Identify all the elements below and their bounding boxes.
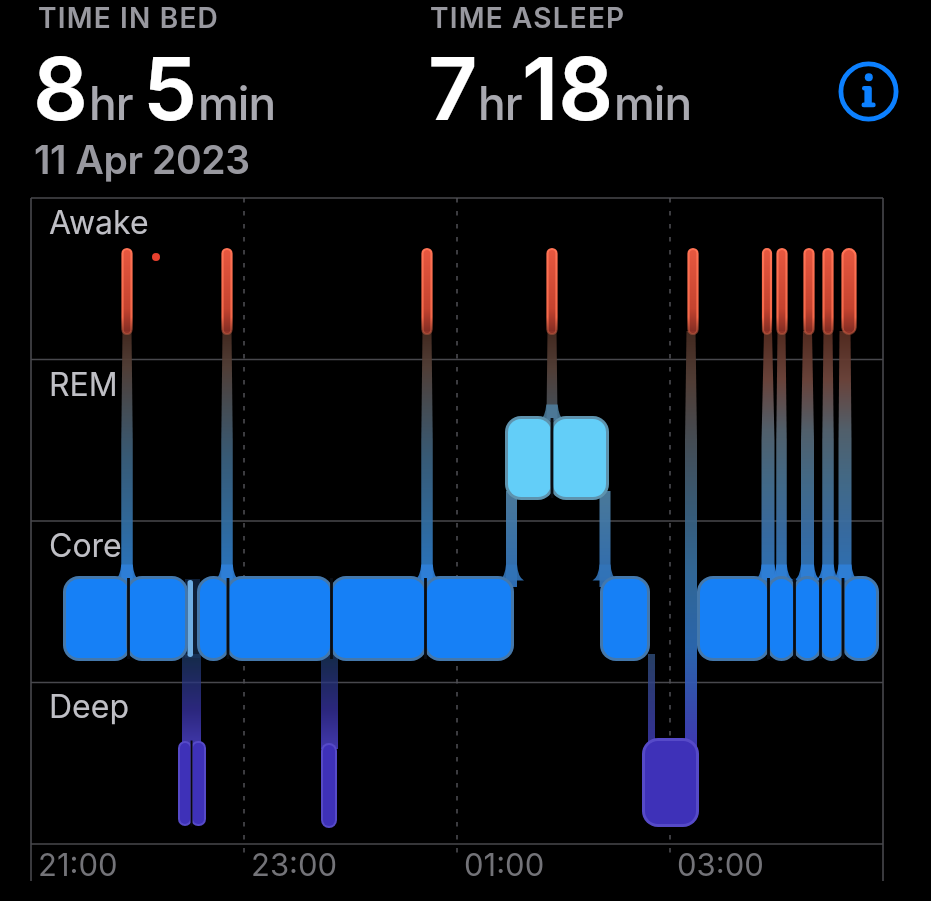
staticText: 5	[143, 37, 198, 141]
staticText: min	[614, 75, 692, 131]
staticText: Core	[49, 526, 122, 565]
button[interactable]	[841, 64, 897, 120]
staticText: 18	[522, 37, 614, 141]
staticText: Deep	[49, 687, 129, 726]
staticText: 03:00	[677, 846, 764, 884]
staticText: hr	[89, 75, 133, 131]
staticText: 7	[428, 37, 478, 141]
staticText: min	[198, 75, 276, 131]
staticText: Awake	[49, 203, 149, 242]
staticText: TIME ASLEEP	[430, 1, 626, 35]
staticText: REM	[49, 365, 118, 404]
staticText: 23:00	[251, 846, 338, 884]
staticText: 11 Apr 2023	[34, 136, 250, 183]
staticText: TIME IN BED	[38, 1, 219, 35]
staticText: 01:00	[464, 846, 545, 884]
staticText: 8	[33, 37, 89, 141]
staticText: 21:00	[38, 846, 118, 884]
staticText: hr	[478, 75, 522, 131]
